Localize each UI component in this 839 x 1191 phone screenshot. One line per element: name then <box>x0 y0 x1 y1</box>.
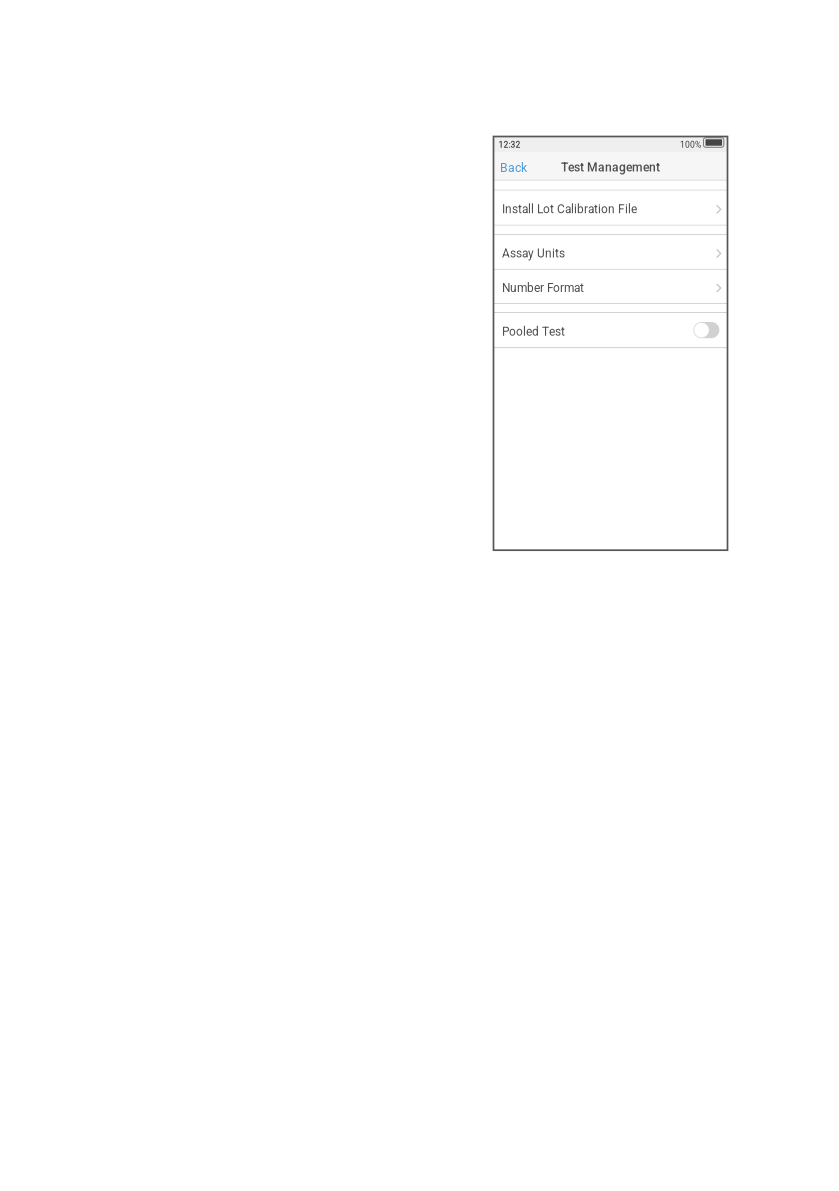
staticText: Pooled Test <box>502 325 565 339</box>
button[interactable]: Back <box>493 155 535 177</box>
staticText: 12:32 <box>498 140 520 150</box>
staticText: Back <box>500 161 527 175</box>
staticText: Install Lot Calibration File <box>502 202 637 216</box>
staticText: Number Format <box>502 281 584 295</box>
staticText: Test Management <box>561 160 660 174</box>
staticText: 100% <box>680 140 701 150</box>
button[interactable]: Install Lot Calibration File <box>493 191 727 225</box>
button[interactable]: Assay Units <box>493 235 727 269</box>
staticText: Assay Units <box>502 246 565 260</box>
button[interactable]: Pooled Test <box>493 313 727 347</box>
button[interactable]: Number Format <box>493 270 727 303</box>
